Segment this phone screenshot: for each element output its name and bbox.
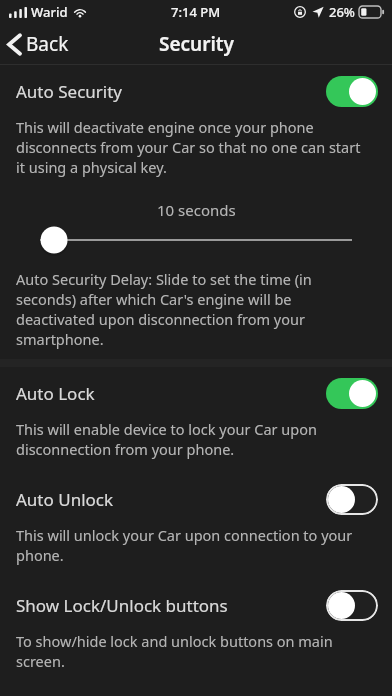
- staticText: Security: [159, 31, 234, 57]
- staticText: 26%: [329, 3, 355, 21]
- staticText: This will enable device to lock your Car…: [16, 419, 372, 459]
- button[interactable]: Toggle, off: [326, 484, 378, 515]
- staticText: To show/hide lock and unlock buttons on …: [16, 631, 372, 671]
- button[interactable]: Auto Security: [0, 65, 392, 117]
- button[interactable]: Show Lock/Unlock buttons: [0, 579, 392, 631]
- staticText: Auto Security Delay: Slide to set the ti…: [16, 269, 372, 349]
- staticText: Auto Unlock: [16, 488, 326, 511]
- staticText: Back: [26, 31, 69, 57]
- button[interactable]: Auto security delay slider: [0, 225, 392, 255]
- staticText: Auto Lock: [16, 382, 326, 405]
- staticText: Auto Security: [16, 80, 326, 103]
- button[interactable]: Back: [0, 27, 79, 61]
- staticText: Warid: [31, 3, 68, 21]
- button[interactable]: Auto Lock: [0, 367, 392, 419]
- staticText: 7:14 PM: [171, 3, 221, 21]
- button[interactable]: Toggle, on: [326, 76, 378, 107]
- staticText: This will deactivate engine once your ph…: [16, 117, 372, 177]
- button[interactable]: Toggle, on: [326, 378, 378, 409]
- staticText: Show Lock/Unlock buttons: [16, 594, 326, 617]
- button[interactable]: Auto Unlock: [0, 473, 392, 525]
- button[interactable]: Toggle, off: [326, 590, 378, 621]
- staticText: 10 seconds: [157, 200, 236, 220]
- staticText: This will unlock your Car upon connectio…: [16, 525, 372, 565]
